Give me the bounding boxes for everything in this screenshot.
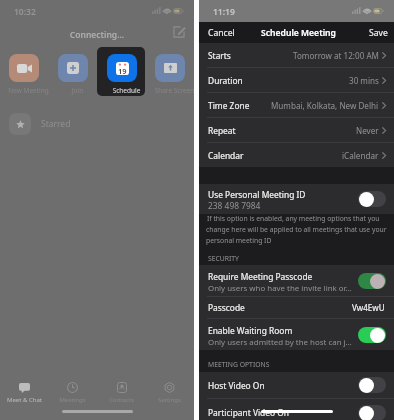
button[interactable]: Passcode bbox=[199, 297, 394, 319]
staticText: change here will be applied to all meeti… bbox=[206, 225, 387, 234]
button[interactable]: Starred bbox=[0, 110, 194, 137]
staticText: Require Meeting Passcode bbox=[208, 271, 313, 282]
button[interactable]: Calendar bbox=[199, 143, 394, 167]
staticText: Meetings bbox=[48, 396, 97, 404]
staticText: MEETING OPTIONS bbox=[208, 360, 270, 369]
staticText: 11:19 bbox=[213, 6, 235, 18]
staticText: Repeat bbox=[208, 125, 236, 136]
staticText: Schedule bbox=[102, 86, 151, 95]
staticText: Enable Waiting Room bbox=[208, 325, 293, 336]
staticText: Meet & Chat bbox=[0, 396, 49, 404]
staticText: Schedule Meeting bbox=[261, 27, 336, 39]
staticText: 238 498 7984 bbox=[208, 200, 261, 211]
button[interactable]: Time Zone bbox=[199, 93, 394, 118]
button[interactable]: Settings bbox=[145, 377, 194, 407]
button[interactable]: Toggle switch bbox=[358, 191, 386, 207]
button[interactable]: 19 bbox=[102, 47, 151, 96]
staticText: 10:32 bbox=[14, 6, 36, 18]
staticText: Only users who have the invite link or… bbox=[208, 283, 352, 294]
button[interactable]: Contacts bbox=[97, 377, 146, 407]
staticText: Join bbox=[53, 86, 102, 95]
staticText: Passcode bbox=[208, 302, 245, 313]
staticText: Host Video On bbox=[208, 380, 265, 391]
button[interactable]: Use Personal Meeting ID bbox=[199, 184, 394, 214]
button[interactable]: Meetings bbox=[48, 377, 97, 407]
staticText: personal meeting ID bbox=[206, 236, 272, 245]
staticText: Connecting... bbox=[0, 29, 194, 41]
button[interactable]: Require Meeting Passcode bbox=[199, 265, 394, 297]
staticText: 19 bbox=[118, 66, 127, 76]
staticText: Duration bbox=[208, 75, 243, 86]
button[interactable]: Share Screen bbox=[150, 47, 199, 96]
staticText: New Meeting bbox=[4, 86, 53, 95]
staticText: Never bbox=[356, 125, 379, 136]
staticText: Participant Video On bbox=[208, 407, 289, 418]
staticText: Only users admitted by the host can j… bbox=[208, 337, 352, 348]
button[interactable]: Toggle switch bbox=[358, 377, 386, 393]
staticText: iCalendar bbox=[342, 150, 379, 161]
staticText: Cancel bbox=[208, 27, 235, 39]
staticText: Mumbai, Kolkata, New Delhi bbox=[271, 100, 379, 111]
button[interactable]: Toggle switch bbox=[358, 405, 386, 420]
button[interactable]: Toggle switch bbox=[358, 273, 386, 289]
staticText: Use Personal Meeting ID bbox=[208, 189, 306, 200]
staticText: If this option is enabled, any meeting o… bbox=[207, 214, 380, 223]
staticText: Tomorrow at 12:00 AM bbox=[293, 50, 379, 61]
staticText: Starred bbox=[41, 118, 71, 130]
button[interactable]: New Meeting bbox=[4, 47, 53, 96]
staticText: Time Zone bbox=[208, 100, 250, 111]
button[interactable]: Starts bbox=[199, 43, 394, 68]
staticText: Settings bbox=[145, 396, 194, 404]
button[interactable]: Compose new message bbox=[172, 25, 186, 39]
button[interactable]: Enable Waiting Room bbox=[199, 319, 394, 350]
staticText: SECURITY bbox=[208, 254, 239, 263]
button[interactable]: Participant Video On bbox=[199, 399, 394, 420]
staticText: Share Screen bbox=[150, 86, 199, 95]
staticText: Contacts bbox=[97, 396, 146, 404]
button[interactable]: Duration bbox=[199, 68, 394, 93]
button[interactable]: Toggle switch bbox=[358, 327, 386, 343]
staticText: Save bbox=[369, 27, 388, 39]
staticText: 30 mins bbox=[349, 75, 379, 86]
staticText: Vw4EwU bbox=[352, 302, 385, 313]
button[interactable]: Cancel bbox=[199, 23, 243, 43]
button[interactable]: Join bbox=[53, 47, 102, 96]
button[interactable]: Save bbox=[361, 23, 394, 43]
staticText: Calendar bbox=[208, 150, 244, 161]
button[interactable]: Meet & Chat bbox=[0, 377, 49, 407]
button[interactable]: Repeat bbox=[199, 118, 394, 143]
staticText: Starts bbox=[208, 50, 231, 61]
button[interactable]: Host Video On bbox=[199, 372, 394, 399]
